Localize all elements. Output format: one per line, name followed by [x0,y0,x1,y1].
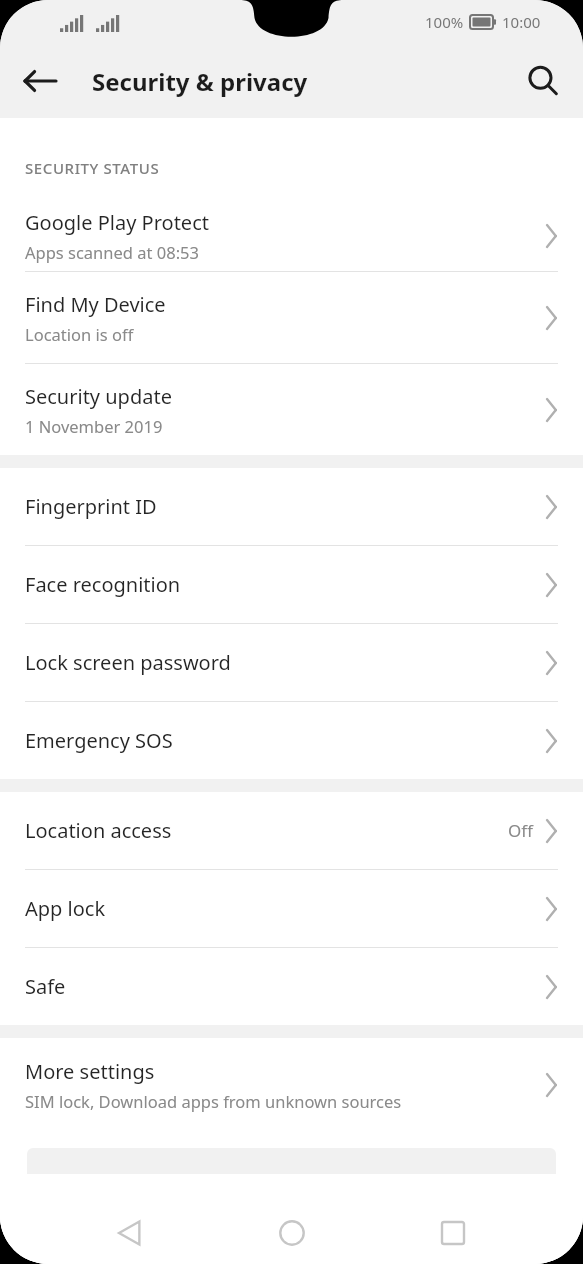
staticText: 10:00 [502,12,541,32]
staticText: SECURITY STATUS [25,158,160,178]
staticText: Off [508,819,533,842]
staticText: Emergency SOS [25,727,173,754]
staticText: Security & privacy [92,65,308,98]
button[interactable]: Location access [0,792,583,869]
staticText: More settings [25,1058,155,1085]
button[interactable]: More settings [0,1038,583,1131]
staticText: SIM lock, Download apps from unknown sou… [25,1090,402,1112]
staticText: Fingerprint ID [25,493,157,520]
staticText: App lock [25,895,106,922]
staticText: 1 November 2019 [25,415,163,437]
button[interactable]: Face recognition [0,546,583,623]
staticText: Location access [25,817,172,844]
button[interactable]: Search [517,55,569,107]
button[interactable]: Security update [0,364,583,455]
staticText: 100% [425,12,464,32]
button[interactable]: Recent apps [421,1202,485,1264]
button[interactable]: Back [14,55,66,107]
button[interactable]: Back [98,1202,162,1264]
button[interactable]: Find My Device [0,272,583,363]
staticText: Safe [25,973,66,1000]
button[interactable]: Google Play Protect [0,201,583,271]
staticText: Lock screen password [25,649,231,676]
staticText: Google Play Protect [25,209,209,236]
button[interactable]: Emergency SOS [0,702,583,779]
staticText: Find My Device [25,291,166,318]
button[interactable]: App lock [0,870,583,947]
staticText: Security update [25,383,172,410]
button[interactable]: Safe [0,948,583,1025]
staticText: Location is off [25,323,134,345]
button[interactable]: Lock screen password [0,624,583,701]
button[interactable]: Fingerprint ID [0,468,583,545]
staticText: Apps scanned at 08:53 [25,241,199,263]
button[interactable]: Home [260,1202,324,1264]
staticText: Face recognition [25,571,181,598]
